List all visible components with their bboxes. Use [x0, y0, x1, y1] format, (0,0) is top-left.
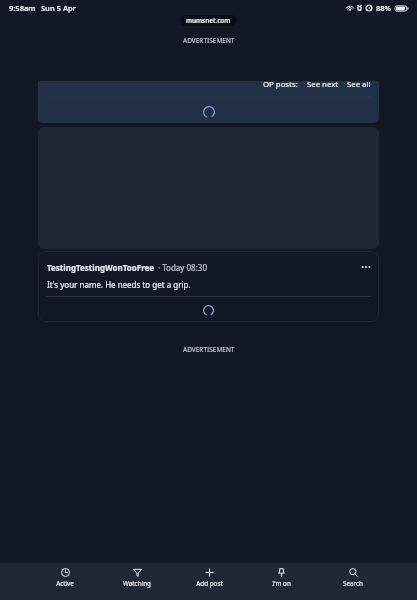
button[interactable]: Watching: [101, 563, 173, 592]
button[interactable]: More options: [358, 259, 374, 275]
button[interactable]: Search: [317, 563, 389, 592]
button[interactable]: See all: [347, 81, 371, 90]
staticText: OP posts:: [263, 81, 298, 90]
staticText: 9:58am: [9, 3, 36, 13]
staticText: · Today 08:30: [158, 262, 207, 273]
staticText: 88%: [376, 3, 392, 13]
button[interactable]: TestingTestingWonTooFree: [38, 251, 379, 322]
staticText: Sun 5 Apr: [41, 3, 76, 13]
button[interactable]: See next: [307, 81, 339, 90]
staticText: It's your name. He needs to get a grip.: [47, 279, 191, 290]
staticText: Add post: [196, 579, 223, 588]
staticText: I'm on: [272, 579, 291, 588]
staticText: TestingTestingWonTooFree: [47, 262, 155, 273]
button[interactable]: Active: [29, 563, 101, 592]
staticText: ADVERTISEMENT: [183, 36, 235, 45]
staticText: ADVERTISEMENT: [183, 345, 235, 354]
staticText: mumsnet.com: [186, 16, 231, 25]
staticText: Search: [343, 579, 363, 588]
staticText: See next: [307, 81, 339, 90]
staticText: Active: [56, 579, 74, 588]
button[interactable]: mumsnet.com: [180, 15, 237, 26]
button[interactable]: I'm on: [245, 563, 317, 592]
button[interactable]: Add post: [173, 563, 245, 592]
staticText: See all: [347, 81, 371, 90]
staticText: Watching: [123, 579, 151, 588]
